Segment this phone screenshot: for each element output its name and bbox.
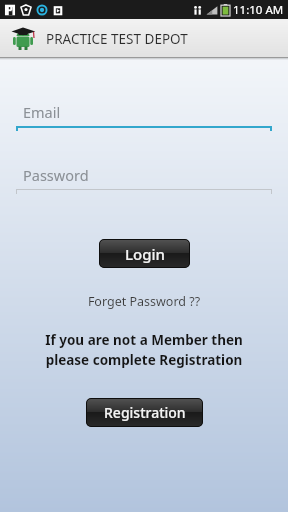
button[interactable]: Password [16, 164, 272, 195]
button[interactable]: Login [99, 239, 190, 268]
staticText: Login [125, 244, 165, 264]
button[interactable]: Email [16, 101, 272, 132]
staticText: Password [23, 165, 89, 185]
button[interactable]: Forget Password ?? [0, 293, 288, 310]
staticText: 11:10 AM [233, 2, 284, 18]
staticText: If you are not a Member then [0, 331, 288, 349]
staticText: Registration [104, 403, 186, 422]
button[interactable]: Registration [86, 398, 203, 427]
staticText: Email [23, 102, 61, 122]
staticText: PRACTICE TEST DEPOT [46, 30, 188, 48]
staticText: please complete Registration [0, 351, 288, 369]
